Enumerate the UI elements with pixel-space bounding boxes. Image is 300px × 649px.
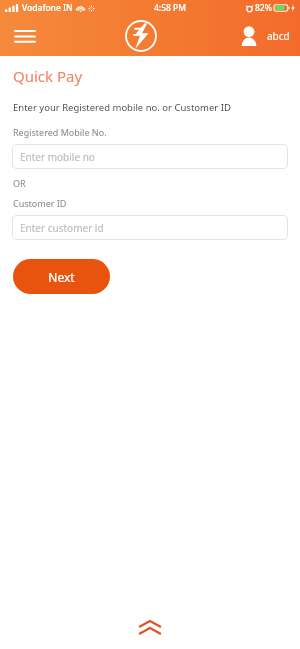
staticText: Next xyxy=(48,269,75,285)
staticText: Enter your Registered mobile no. or Cust… xyxy=(13,101,231,114)
staticText: 4:58 PM xyxy=(154,2,187,14)
button[interactable]: abcd xyxy=(240,26,290,46)
staticText: 82% xyxy=(255,2,272,14)
staticText: Vodafone IN xyxy=(22,2,73,14)
staticText: OR xyxy=(13,177,26,189)
staticText: Enter mobile no xyxy=(20,150,95,164)
staticText: abcd xyxy=(267,29,290,43)
button[interactable]: Scroll up xyxy=(0,609,300,649)
button[interactable]: App logo xyxy=(122,17,160,55)
staticText: Quick Pay xyxy=(13,66,83,86)
staticText: Enter customer id xyxy=(20,221,104,235)
button[interactable]: Next xyxy=(13,259,110,294)
button[interactable]: Enter customer id xyxy=(12,215,288,240)
button[interactable]: Menu xyxy=(8,19,42,53)
staticText: Registered Mobile No. xyxy=(13,126,107,138)
button[interactable]: Enter mobile no xyxy=(12,144,288,169)
staticText: Customer ID xyxy=(13,197,67,209)
